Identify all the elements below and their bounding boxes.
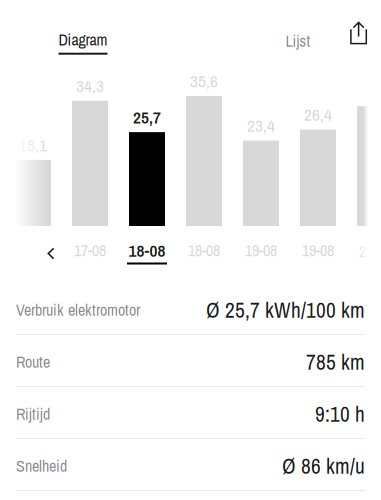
button[interactable]: Previous (39, 241, 63, 265)
button[interactable]: 19-08 (289, 241, 346, 266)
button[interactable]: 2 (346, 241, 381, 266)
button[interactable]: Route (0, 335, 381, 387)
staticText: Snelheid (16, 455, 67, 477)
staticText: 19-08 (245, 240, 277, 261)
button[interactable]: 17-08 (61, 241, 118, 266)
button[interactable]: Lijst (275, 28, 321, 54)
button[interactable]: Share (344, 17, 374, 49)
staticText: 785 km (306, 348, 365, 376)
staticText: 34,3 (76, 74, 104, 97)
staticText: Ø 86 km/u (282, 452, 365, 480)
staticText: Route (16, 351, 50, 373)
staticText: 18,1 (19, 133, 47, 156)
button[interactable]: 19-08 (232, 241, 289, 266)
staticText: 35,6 (190, 69, 218, 93)
staticText: 26,4 (304, 103, 332, 126)
button[interactable]: Verbruik elektromotor (0, 283, 381, 335)
button[interactable]: Rijtijd (0, 387, 381, 439)
staticText: Lijst (285, 30, 310, 52)
button[interactable]: Diagram (50, 28, 116, 58)
staticText: 17-08 (74, 240, 106, 261)
staticText: 25,7 (133, 105, 161, 129)
staticText: Rijtijd (16, 403, 50, 425)
staticText: 9:10 h (315, 400, 365, 428)
staticText: 23,4 (247, 114, 275, 137)
button[interactable]: Snelheid (0, 439, 381, 491)
staticText: 18-08 (188, 240, 220, 261)
staticText: Verbruik elektromotor (16, 299, 140, 321)
staticText: Diagram (58, 29, 107, 50)
staticText: Ø 25,7 kWh/100 km (206, 296, 365, 324)
button[interactable]: 18-08 (175, 241, 232, 266)
staticText: 19-08 (302, 240, 334, 261)
staticText: 18-08 (128, 239, 165, 262)
button[interactable]: 18-08 (118, 241, 175, 266)
staticText: 23-08 (359, 241, 381, 262)
